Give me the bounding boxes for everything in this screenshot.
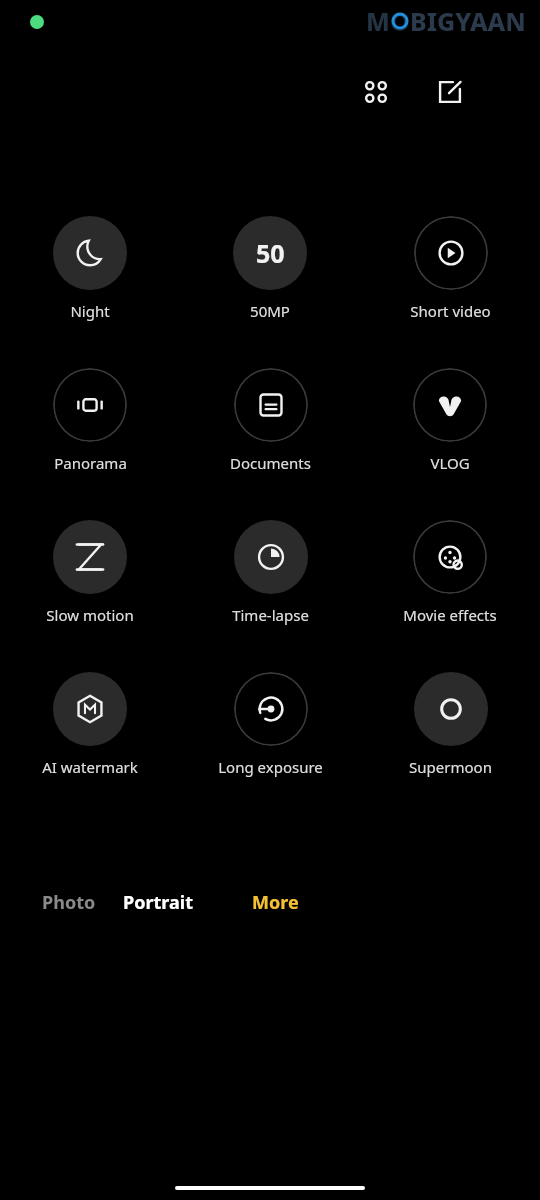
button[interactable]: Portrait [96,885,220,919]
button[interactable]: Night [53,216,127,321]
button[interactable]: Camera modes grid [354,70,398,114]
button[interactable]: Time-lapse [232,520,309,625]
button[interactable]: Panorama [53,368,127,473]
staticText: O [390,4,410,38]
button[interactable]: Photo [0,885,96,919]
staticText: M [366,4,390,38]
staticText: 50 [256,236,285,270]
staticText: BIGYAAN [410,4,526,38]
button[interactable]: AI watermark [42,672,138,777]
staticText: Night [70,301,110,321]
staticText: Portrait [123,890,193,915]
staticText: Photo [42,890,96,915]
staticText: Panorama [54,453,127,473]
button[interactable]: More [220,885,330,919]
button[interactable]: Slow motion [46,520,134,625]
staticText: Time-lapse [232,605,309,625]
staticText: Supermoon [409,757,492,777]
staticText: 50MP [250,301,290,321]
staticText: AI watermark [42,757,138,777]
button[interactable]: VLOG [413,368,487,473]
button[interactable]: Short video [410,216,491,321]
button[interactable]: Supermoon [409,672,492,777]
staticText: Documents [230,453,311,473]
button[interactable]: Documents [230,368,311,473]
staticText: Long exposure [218,757,323,777]
staticText: Short video [410,301,491,321]
button[interactable]: Movie effects [403,520,497,625]
staticText: Slow motion [46,605,134,625]
button[interactable]: Long exposure [218,672,323,777]
staticText: More [252,890,299,915]
staticText: VLOG [430,453,470,473]
staticText: Movie effects [403,605,497,625]
button[interactable]: 50 [233,216,307,321]
button[interactable]: Edit modes [428,70,472,114]
